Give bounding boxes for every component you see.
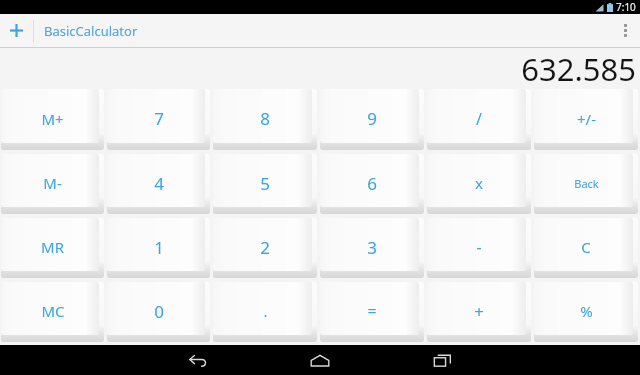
button[interactable]: 9 [320, 89, 424, 150]
staticText: 0 [154, 300, 164, 323]
staticText: = [367, 300, 377, 322]
staticText: 8 [260, 107, 270, 130]
button[interactable]: / [427, 89, 531, 150]
button[interactable]: % [534, 282, 638, 342]
staticText: . [263, 301, 268, 321]
button[interactable]: 6 [320, 154, 424, 214]
button[interactable]: 5 [213, 154, 317, 214]
staticText: - [476, 236, 482, 258]
button[interactable]: 3 [320, 218, 424, 278]
button[interactable]: C [534, 218, 638, 278]
staticText: 2 [260, 236, 270, 259]
button[interactable]: MR [1, 218, 104, 278]
staticText: 5 [260, 172, 270, 195]
button[interactable]: 7 [107, 89, 210, 150]
staticText: 3 [367, 236, 377, 259]
staticText: 7:10 [616, 0, 636, 14]
button[interactable]: Back [534, 154, 638, 214]
staticText: / [476, 108, 482, 130]
staticText: % [580, 301, 593, 321]
button[interactable]: 4 [107, 154, 210, 214]
button[interactable]: +/- [534, 89, 638, 150]
staticText: 9 [367, 107, 377, 130]
staticText: 4 [154, 172, 164, 195]
staticText: M+ [41, 109, 64, 129]
button[interactable]: Home [283, 345, 357, 375]
button[interactable]: More options [610, 14, 640, 47]
button[interactable]: = [320, 282, 424, 342]
button[interactable]: . [213, 282, 317, 342]
button[interactable]: + [427, 282, 531, 342]
button[interactable]: 0 [107, 282, 210, 342]
button[interactable]: Back [161, 345, 235, 375]
staticText: 7 [154, 107, 164, 130]
staticText: Back [574, 176, 599, 191]
button[interactable]: 1 [107, 218, 210, 278]
button[interactable]: MC [1, 282, 104, 342]
staticText: 632.585 [521, 48, 636, 88]
staticText: BasicCalculator [44, 22, 138, 40]
button[interactable]: 2 [213, 218, 317, 278]
staticText: +/- [577, 109, 596, 129]
staticText: + [474, 300, 484, 323]
button[interactable]: x [427, 154, 531, 214]
staticText: C [581, 237, 591, 257]
button[interactable]: 8 [213, 89, 317, 150]
button[interactable]: Add [0, 14, 33, 47]
staticText: MR [41, 237, 64, 257]
button[interactable]: M+ [1, 89, 104, 150]
staticText: M- [43, 173, 62, 193]
button[interactable]: M- [1, 154, 104, 214]
staticText: MC [41, 301, 65, 321]
staticText: 1 [154, 236, 164, 259]
staticText: x [475, 173, 483, 193]
button[interactable]: Recent apps [405, 345, 479, 375]
staticText: 6 [367, 172, 377, 195]
button[interactable]: - [427, 218, 531, 278]
